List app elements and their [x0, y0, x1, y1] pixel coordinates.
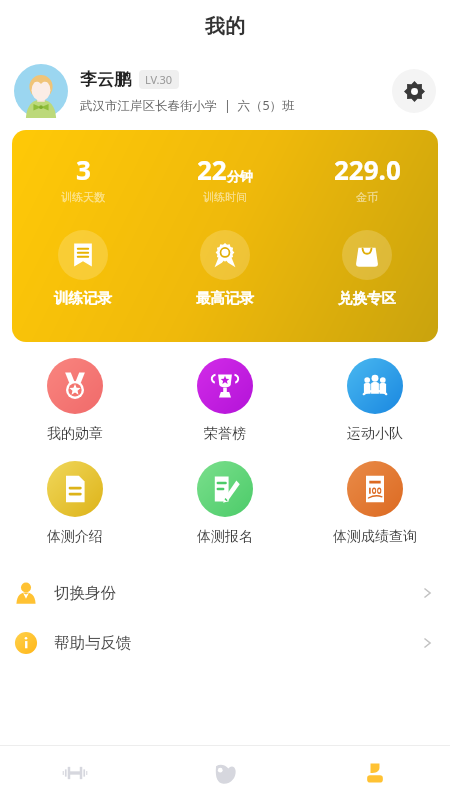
staticText: 训练时间 — [203, 190, 247, 204]
staticText: 最高记录 — [196, 289, 254, 307]
staticText: 训练天数 — [61, 190, 105, 204]
staticText: 体测报名 — [197, 528, 253, 546]
button[interactable]: 荣誉榜 — [150, 356, 300, 445]
button[interactable]: 体测成绩查询 — [300, 459, 450, 548]
button[interactable]: 兑换专区 — [296, 228, 438, 309]
staticText: 我的勋章 — [47, 425, 103, 443]
button[interactable]: Profile — [300, 746, 450, 800]
button[interactable]: 运动小队 — [300, 356, 450, 445]
button[interactable]: 切换身份 — [0, 568, 450, 618]
staticText: 我的 — [205, 14, 245, 39]
button[interactable]: Training — [0, 746, 150, 800]
button[interactable]: 体测报名 — [150, 459, 300, 548]
button[interactable]: Settings — [392, 69, 436, 113]
button[interactable]: 体测介绍 — [0, 459, 150, 548]
staticText: 帮助与反馈 — [54, 633, 420, 653]
staticText: LV.30 — [145, 72, 173, 87]
staticText: 李云鹏 — [80, 69, 131, 90]
staticText: 3 — [76, 152, 91, 187]
staticText: 训练记录 — [54, 289, 112, 307]
staticText: 武汉市江岸区长春街小学 | 六（5）班 — [80, 97, 295, 114]
staticText: 运动小队 — [347, 425, 403, 443]
staticText: 229.0 — [334, 152, 401, 187]
staticText: 荣誉榜 — [204, 425, 246, 443]
staticText: 金币 — [356, 190, 378, 204]
staticText: 切换身份 — [54, 583, 420, 603]
staticText: 分钟 — [227, 168, 253, 184]
button[interactable]: 帮助与反馈 — [0, 618, 450, 668]
staticText: 22 — [197, 152, 227, 187]
staticText: 兑换专区 — [338, 289, 396, 307]
staticText: 体测成绩查询 — [333, 528, 417, 546]
button[interactable]: 最高记录 — [154, 228, 296, 309]
button[interactable]: 我的勋章 — [0, 356, 150, 445]
staticText: 体测介绍 — [47, 528, 103, 546]
button[interactable]: 训练记录 — [12, 228, 154, 309]
button[interactable]: Strength — [150, 746, 300, 800]
